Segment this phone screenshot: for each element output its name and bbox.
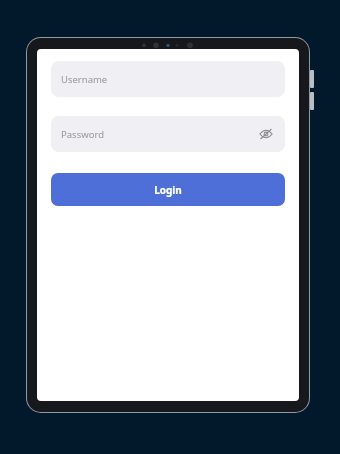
staticText: Login [154, 183, 182, 197]
button[interactable]: Password [51, 116, 285, 152]
staticText: Username [61, 73, 108, 86]
staticText: Password [61, 128, 104, 141]
button[interactable]: Login [51, 173, 285, 206]
button[interactable]: Username [51, 61, 285, 97]
button[interactable]: Show password [257, 125, 275, 143]
